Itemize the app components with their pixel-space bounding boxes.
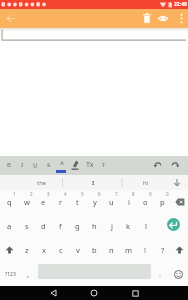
staticText: l [145, 221, 147, 231]
button[interactable] [151, 158, 165, 172]
staticText: j [111, 221, 113, 231]
staticText: 6 [98, 191, 101, 197]
staticText: the [37, 179, 47, 187]
staticText: r [59, 197, 63, 207]
button[interactable]: hi [131, 175, 161, 190]
button[interactable]: U [29, 158, 42, 172]
staticText: h [92, 221, 97, 231]
button[interactable] [3, 11, 19, 26]
button[interactable]: A [55, 156, 68, 170]
staticText: y [93, 197, 97, 207]
button[interactable]: S [42, 158, 55, 172]
button[interactable]: g [69, 214, 86, 238]
button[interactable] [156, 11, 170, 26]
staticText: 5 [81, 191, 84, 197]
button[interactable]: w [18, 190, 35, 214]
staticText: , [27, 269, 30, 279]
button[interactable] [87, 286, 101, 300]
staticText: f [59, 221, 62, 231]
button[interactable]: k [120, 214, 137, 238]
staticText: 8 [132, 191, 135, 197]
staticText: B [7, 161, 11, 169]
staticText: 3 [47, 191, 50, 197]
button[interactable]: e [35, 190, 52, 214]
staticText: e [41, 197, 46, 207]
button[interactable] [128, 286, 142, 300]
staticText: 9 [149, 191, 152, 197]
button[interactable]: Tx [83, 158, 97, 172]
button[interactable] [46, 286, 60, 300]
staticText: s [25, 221, 29, 231]
staticText: 2 [30, 191, 33, 197]
button[interactable]: I [16, 158, 29, 172]
staticText: m [125, 245, 133, 255]
button[interactable]: ! [137, 238, 154, 262]
button[interactable]: t [69, 190, 86, 214]
button[interactable] [168, 262, 188, 286]
staticText: x [42, 245, 46, 255]
staticText: o [143, 197, 148, 207]
staticText: T [102, 161, 106, 169]
button[interactable]: p [154, 190, 171, 214]
button[interactable]: z [18, 238, 35, 262]
button[interactable]: B [2, 158, 15, 172]
button[interactable]: c [52, 238, 69, 262]
button[interactable]: the [27, 175, 57, 190]
staticText: S [47, 161, 51, 169]
staticText: b [92, 245, 97, 255]
button[interactable]: r [52, 190, 69, 214]
staticText: hi [143, 179, 149, 187]
button[interactable] [0, 238, 18, 262]
staticText: d [41, 221, 46, 231]
staticText: Tx [86, 160, 94, 170]
button[interactable]: i [120, 190, 137, 214]
button[interactable]: j [103, 214, 120, 238]
button[interactable]: ?123 [0, 262, 21, 286]
button[interactable]: o [137, 190, 154, 214]
staticText: A [60, 159, 64, 167]
button[interactable] [168, 158, 182, 172]
button[interactable]: a [0, 214, 18, 238]
button[interactable] [140, 11, 154, 26]
button[interactable]: , [21, 262, 36, 286]
staticText: z [25, 245, 29, 255]
staticText: a [7, 221, 12, 231]
button[interactable]: y [86, 190, 103, 214]
button[interactable] [175, 11, 188, 26]
button[interactable]: n [103, 238, 120, 262]
button[interactable]: I [78, 175, 108, 190]
button[interactable] [69, 158, 81, 172]
button[interactable]: . [153, 262, 168, 286]
staticText: n [109, 245, 114, 255]
staticText: I [21, 161, 24, 169]
button[interactable]: b [86, 238, 103, 262]
button[interactable]: T [97, 158, 110, 172]
button[interactable] [154, 214, 188, 238]
staticText: t [76, 197, 79, 207]
staticText: . [159, 269, 162, 279]
button[interactable]: q [0, 190, 18, 214]
button[interactable]: v [69, 238, 86, 262]
staticText: ? [161, 245, 165, 255]
button[interactable]: u [103, 190, 120, 214]
staticText: v [76, 245, 80, 255]
button[interactable]: f [52, 214, 69, 238]
staticText: ! [144, 245, 147, 255]
staticText: p [160, 197, 165, 207]
staticText: U [33, 161, 38, 169]
button[interactable]: h [86, 214, 103, 238]
staticText: u [109, 197, 114, 207]
button[interactable] [171, 190, 188, 214]
button[interactable]: m [120, 238, 137, 262]
staticText: c [59, 245, 63, 255]
button[interactable]: s [18, 214, 35, 238]
staticText: k [126, 221, 131, 231]
button[interactable]: ? [154, 238, 171, 262]
staticText: ?123 [5, 271, 16, 278]
button[interactable]: l [137, 214, 154, 238]
staticText: 4 [64, 191, 67, 197]
button[interactable]: x [35, 238, 52, 262]
button[interactable]: d [35, 214, 52, 238]
button[interactable] [171, 238, 188, 262]
